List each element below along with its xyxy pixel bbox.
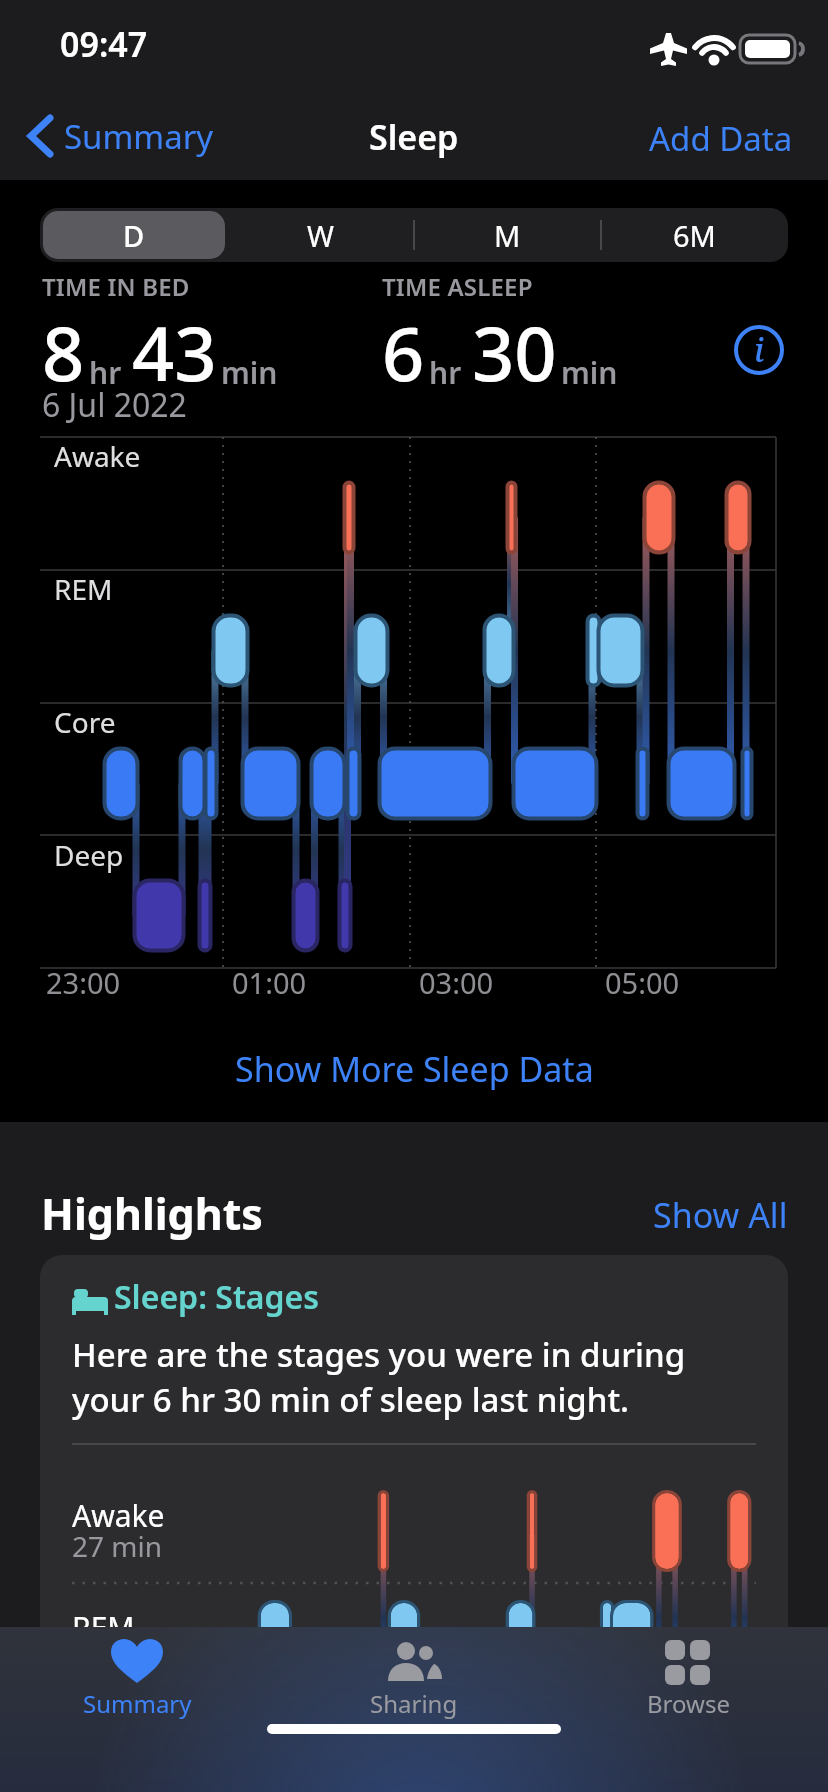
staticText: 6M <box>673 216 716 255</box>
button[interactable]: Add Data <box>649 116 793 161</box>
staticText: hr <box>89 352 122 393</box>
staticText: TIME IN BED <box>42 270 190 303</box>
button[interactable]: Summary <box>26 112 214 160</box>
staticText: min <box>561 352 618 393</box>
staticText: Here are the stages you were in during y… <box>72 1332 686 1421</box>
staticText: hr <box>429 352 462 393</box>
button[interactable]: i <box>733 324 785 376</box>
button[interactable]: 6M <box>601 208 788 262</box>
staticText: Awake <box>72 1495 165 1536</box>
button[interactable]: Sleep: Stages <box>40 1255 788 1792</box>
button[interactable]: W <box>227 208 414 262</box>
staticText: Awake <box>54 437 141 475</box>
button[interactable]: D <box>43 211 225 259</box>
staticText: min <box>221 352 278 393</box>
staticText: Deep <box>54 836 124 874</box>
staticText: Core <box>54 703 116 741</box>
staticText: 30 <box>472 302 557 403</box>
button[interactable]: Sharing <box>334 1639 494 1731</box>
button[interactable]: Browse <box>608 1639 768 1731</box>
staticText: Sharing <box>370 1687 458 1720</box>
button[interactable]: Show All <box>653 1192 788 1238</box>
staticText: Highlights <box>41 1184 263 1243</box>
staticText: 6 Jul 2022 <box>42 383 187 427</box>
staticText: REM <box>72 1607 135 1648</box>
staticText: D <box>123 216 145 255</box>
staticText: 8 <box>42 302 85 403</box>
button[interactable]: Summary <box>57 1639 217 1731</box>
staticText: 27 min <box>72 1527 163 1565</box>
staticText: i <box>754 328 765 372</box>
button[interactable]: Show More Sleep Data <box>235 1046 594 1092</box>
staticText: 05:00 <box>605 963 680 1002</box>
staticText: W <box>307 216 334 255</box>
staticText: 09:47 <box>60 21 148 67</box>
staticText: Browse <box>647 1687 730 1720</box>
staticText: Sleep: Stages <box>114 1275 320 1319</box>
staticText: 43 <box>132 302 217 403</box>
staticText: REM <box>54 570 113 608</box>
button[interactable]: M <box>414 208 601 262</box>
staticText: 03:00 <box>419 963 494 1002</box>
staticText: 01:00 <box>232 963 307 1002</box>
staticText: Summary <box>83 1687 192 1720</box>
staticText: TIME ASLEEP <box>382 270 533 303</box>
staticText: M <box>494 216 521 255</box>
staticText: Summary <box>64 114 214 159</box>
staticText: Sleep <box>369 114 459 160</box>
staticText: 23:00 <box>46 963 121 1002</box>
staticText: 6 <box>382 302 425 403</box>
